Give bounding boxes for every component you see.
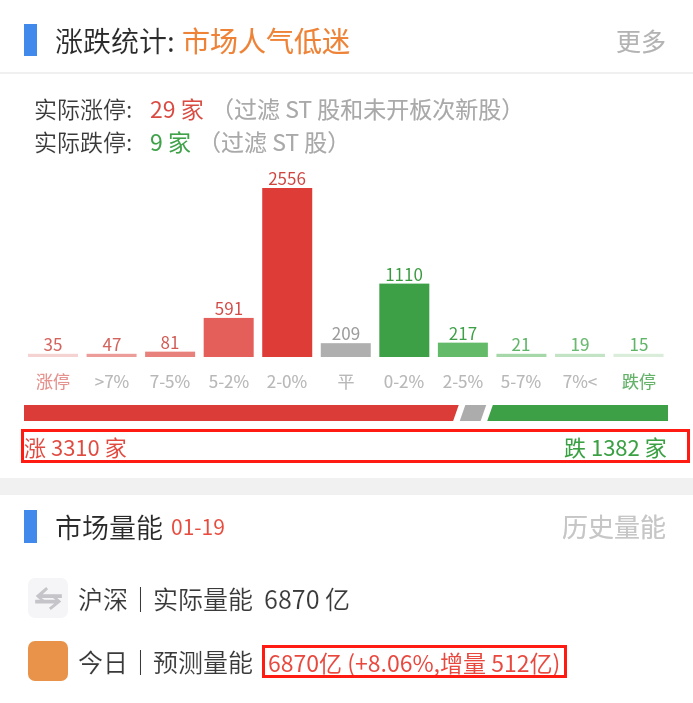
button[interactable]: 市场量能 [0, 495, 693, 557]
staticText: >7% [67, 368, 157, 393]
staticText: 涨停 [8, 368, 98, 393]
button[interactable]: 涨跌统计: [0, 0, 693, 73]
staticText: （过滤 ST 股） [198, 124, 351, 157]
staticText: 今日｜预测量能 [78, 643, 254, 679]
staticText: 15 [594, 331, 684, 356]
staticText: 0-2% [359, 368, 449, 393]
staticText: 2-5% [418, 368, 508, 393]
button[interactable]: 涨 3310 家 [21, 429, 690, 463]
staticText: 7%< [535, 368, 625, 393]
staticText: （过滤 ST 股和未开板次新股） [211, 91, 525, 124]
staticText: 5-7% [476, 368, 566, 393]
staticText: 涨 3310 家 [24, 430, 127, 462]
staticText: 591 [184, 295, 274, 320]
staticText: 29 家 [150, 91, 204, 124]
staticText: 更多 [616, 22, 667, 58]
button[interactable]: 切换市场 [0, 568, 693, 628]
staticText: 217 [418, 320, 508, 345]
staticText: 19 [535, 331, 625, 356]
button[interactable]: 今日｜预测量能 [0, 633, 693, 689]
staticText: 实际涨停: [34, 91, 133, 124]
staticText: 21 [476, 331, 566, 356]
button[interactable]: 历史量能 [556, 501, 673, 551]
staticText: 6870 亿 [264, 580, 351, 616]
staticText: 5-2% [184, 368, 274, 393]
staticText: 2556 [242, 165, 332, 190]
staticText: 1110 [359, 261, 449, 286]
staticText: 81 [125, 329, 215, 354]
staticText: 历史量能 [562, 507, 667, 545]
button[interactable]: 更多 [598, 12, 685, 68]
staticText: 01-19 [171, 511, 225, 541]
staticText: 7-5% [125, 368, 215, 393]
staticText: 涨跌统计: [55, 20, 182, 61]
staticText: 实际跌停: [34, 124, 133, 157]
staticText: 沪深｜实际量能 [78, 580, 254, 616]
staticText: 市场人气低迷 [182, 20, 351, 61]
staticText: 35 [8, 331, 98, 356]
other: 切换市场 [28, 578, 68, 618]
staticText: 209 [301, 320, 391, 345]
staticText: 市场量能 [55, 507, 163, 546]
staticText: 2-0% [242, 368, 332, 393]
staticText: 47 [67, 331, 157, 356]
staticText: 跌停 [594, 368, 684, 393]
staticText: 6870亿 (+8.06%,增量 512亿) [268, 645, 561, 678]
staticText: 跌 1382 家 [564, 430, 667, 462]
staticText: 平 [301, 368, 391, 393]
staticText: 9 家 [150, 124, 191, 157]
